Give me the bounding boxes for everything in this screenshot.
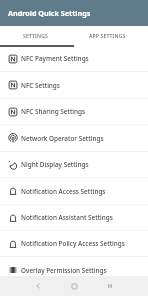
staticText: Notification Assistant Settings xyxy=(21,213,113,222)
button[interactable]: NFC Payment Settings xyxy=(0,47,148,72)
button[interactable]: Notification Assistant Settings xyxy=(0,205,148,231)
button[interactable]: SETTINGS xyxy=(0,26,71,47)
button[interactable]: Night Display Settings xyxy=(0,152,148,178)
staticText: Android Quick Settings xyxy=(8,8,91,18)
staticText: Network Operator Settings xyxy=(21,134,104,143)
staticText: Overlay Permission Settings xyxy=(21,266,107,275)
button[interactable]: APP SETTINGS xyxy=(71,26,143,47)
button[interactable]: Back xyxy=(29,277,47,295)
button[interactable]: Notification Access Settings xyxy=(0,178,148,205)
button[interactable]: Overlay Permission Settings xyxy=(0,257,148,276)
staticText: Notification Policy Access Settings xyxy=(21,239,125,248)
staticText: NFC Sharing Settings xyxy=(21,107,86,116)
button[interactable]: Notification Policy Access Settings xyxy=(0,231,148,257)
staticText: NFC Payment Settings xyxy=(21,54,89,63)
button[interactable]: NFC Settings xyxy=(0,72,148,99)
staticText: Notification Access Settings xyxy=(21,187,106,196)
button[interactable]: Home xyxy=(65,277,83,295)
staticText: NFC Settings xyxy=(21,81,60,90)
button[interactable]: NFC Sharing Settings xyxy=(0,99,148,125)
staticText: Night Display Settings xyxy=(21,160,89,169)
button[interactable]: Recents xyxy=(101,277,119,295)
button[interactable]: Network Operator Settings xyxy=(0,125,148,152)
staticText: APP SETTINGS xyxy=(89,33,126,40)
staticText: SETTINGS xyxy=(23,33,49,40)
